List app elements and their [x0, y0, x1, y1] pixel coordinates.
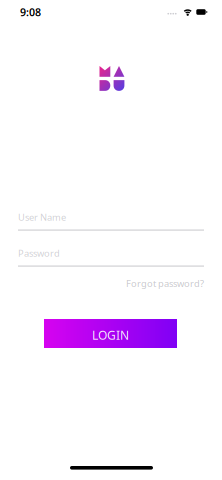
staticText: 9:08 — [20, 5, 41, 19]
staticText: LOGIN — [92, 327, 129, 343]
staticText: User Name — [18, 211, 66, 223]
button[interactable]: Password — [18, 244, 204, 266]
button[interactable]: Forgot password? — [18, 278, 204, 289]
button[interactable]: LOGIN — [44, 319, 177, 348]
staticText: Forgot password? — [126, 277, 204, 290]
staticText: Password — [18, 247, 60, 259]
button[interactable]: User Name — [18, 208, 204, 230]
